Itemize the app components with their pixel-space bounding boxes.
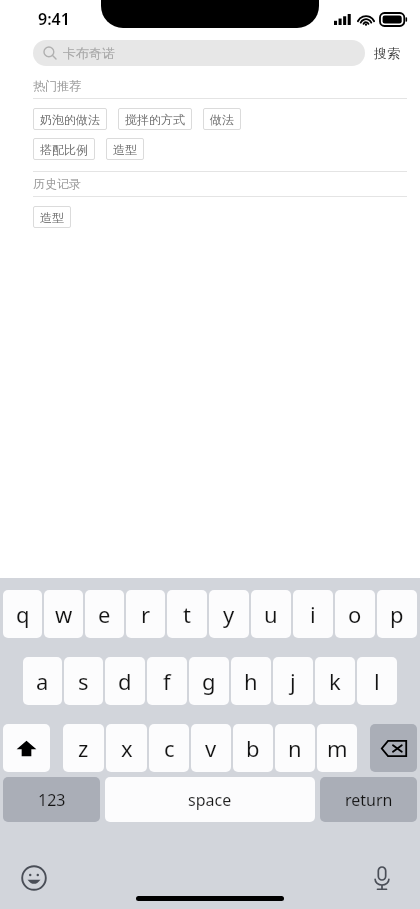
staticText: b [246, 733, 260, 763]
staticText: c [164, 733, 175, 763]
staticText: o [348, 599, 362, 629]
staticText: k [329, 666, 341, 696]
staticText: 卡布奇诺 [63, 45, 115, 61]
button[interactable]: 搭配比例 [33, 138, 95, 160]
staticText: 搜索 [374, 45, 400, 61]
staticText: g [202, 666, 216, 696]
staticText: 搭配比例 [40, 142, 88, 157]
staticText: s [78, 666, 89, 696]
staticText: h [244, 666, 258, 696]
button[interactable]: 造型 [106, 138, 144, 160]
button[interactable]: q [3, 590, 42, 638]
button[interactable]: d [105, 657, 145, 705]
button[interactable]: y [209, 590, 249, 638]
button[interactable]: j [273, 657, 313, 705]
button[interactable]: r [126, 590, 165, 638]
staticText: p [390, 599, 404, 629]
button[interactable]: Dictation [365, 861, 399, 895]
staticText: r [141, 599, 151, 629]
button[interactable]: x [106, 724, 147, 772]
button[interactable]: s [64, 657, 103, 705]
staticText: l [374, 666, 380, 696]
button[interactable]: 卡布奇诺 [33, 40, 365, 66]
staticText: return [345, 789, 393, 811]
button[interactable]: i [293, 590, 333, 638]
staticText: y [223, 599, 235, 629]
staticText: d [118, 666, 132, 696]
button[interactable]: 奶泡的做法 [33, 108, 107, 130]
staticText: t [183, 599, 191, 629]
staticText: q [16, 599, 30, 629]
button[interactable]: 做法 [203, 108, 241, 130]
button[interactable]: Backspace [370, 724, 417, 772]
button[interactable]: 搜索 [365, 41, 409, 65]
staticText: v [205, 733, 217, 763]
button[interactable]: Emoji keyboard [17, 861, 51, 895]
button[interactable]: g [189, 657, 229, 705]
staticText: 9:41 [38, 8, 70, 30]
staticText: j [290, 666, 296, 696]
button[interactable]: m [317, 724, 357, 772]
button[interactable]: c [149, 724, 189, 772]
button[interactable]: f [147, 657, 187, 705]
button[interactable]: n [275, 724, 315, 772]
staticText: 奶泡的做法 [40, 112, 100, 127]
staticText: 搅拌的方式 [125, 112, 185, 127]
button[interactable]: h [231, 657, 271, 705]
staticText: 热门推荐 [33, 78, 81, 93]
staticText: 造型 [40, 210, 64, 225]
staticText: 历史记录 [33, 176, 81, 191]
button[interactable]: space [105, 777, 315, 822]
button[interactable]: k [315, 657, 355, 705]
staticText: x [121, 733, 133, 763]
staticText: a [36, 666, 49, 696]
button[interactable]: a [23, 657, 62, 705]
staticText: e [98, 599, 111, 629]
staticText: w [55, 599, 73, 629]
button[interactable]: u [251, 590, 291, 638]
staticText: space [188, 789, 232, 811]
staticText: f [163, 666, 171, 696]
button[interactable]: return [320, 777, 417, 822]
button[interactable]: z [63, 724, 104, 772]
staticText: n [288, 733, 302, 763]
button[interactable]: w [44, 590, 83, 638]
staticText: m [327, 733, 348, 763]
staticText: 123 [38, 789, 66, 811]
button[interactable]: e [85, 590, 124, 638]
staticText: 造型 [113, 142, 137, 157]
button[interactable]: p [377, 590, 417, 638]
staticText: z [78, 733, 89, 763]
button[interactable]: t [167, 590, 207, 638]
staticText: u [264, 599, 278, 629]
staticText: 做法 [210, 112, 234, 127]
button[interactable]: Shift [3, 724, 50, 772]
button[interactable]: v [191, 724, 231, 772]
button[interactable]: 123 [3, 777, 100, 822]
button[interactable]: l [357, 657, 397, 705]
button[interactable]: b [233, 724, 273, 772]
staticText: i [310, 599, 316, 629]
button[interactable]: 搅拌的方式 [118, 108, 192, 130]
button[interactable]: o [335, 590, 375, 638]
button[interactable]: 造型 [33, 206, 71, 228]
